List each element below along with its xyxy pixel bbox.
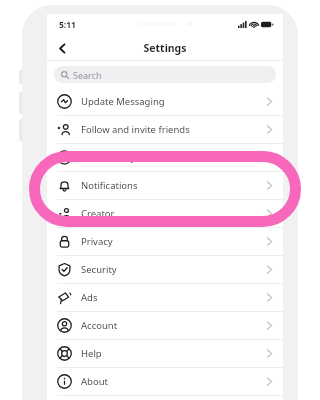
button[interactable]: Account xyxy=(47,312,283,339)
staticText: About xyxy=(81,375,108,388)
button[interactable]: Security xyxy=(47,256,283,283)
button[interactable]: Ads xyxy=(47,284,283,311)
button[interactable]: Search xyxy=(54,66,276,83)
staticText: Notifications xyxy=(81,179,138,192)
staticText: 5:11 xyxy=(59,19,76,31)
button[interactable]: Follow and invite friends xyxy=(47,116,283,143)
staticText: Search xyxy=(73,69,102,81)
staticText: Creator xyxy=(81,207,115,220)
staticText: Security xyxy=(81,263,117,276)
staticText: Account xyxy=(81,319,118,332)
staticText: Help xyxy=(81,347,102,360)
button[interactable]: About xyxy=(47,368,283,395)
button[interactable]: Help xyxy=(47,340,283,367)
staticText: Your activity xyxy=(81,151,136,164)
staticText: Ads xyxy=(81,291,98,304)
staticText: Update Messaging xyxy=(81,95,165,108)
button[interactable]: Notifications xyxy=(47,172,283,199)
button[interactable]: Privacy xyxy=(47,228,283,255)
button[interactable]: Back xyxy=(52,38,72,58)
button[interactable]: Your activity xyxy=(47,144,283,171)
staticText: Settings xyxy=(143,41,187,55)
staticText: Follow and invite friends xyxy=(81,123,190,136)
staticText: Privacy xyxy=(81,235,113,248)
button[interactable]: Update Messaging xyxy=(47,88,283,115)
button[interactable]: Creator xyxy=(47,200,283,227)
